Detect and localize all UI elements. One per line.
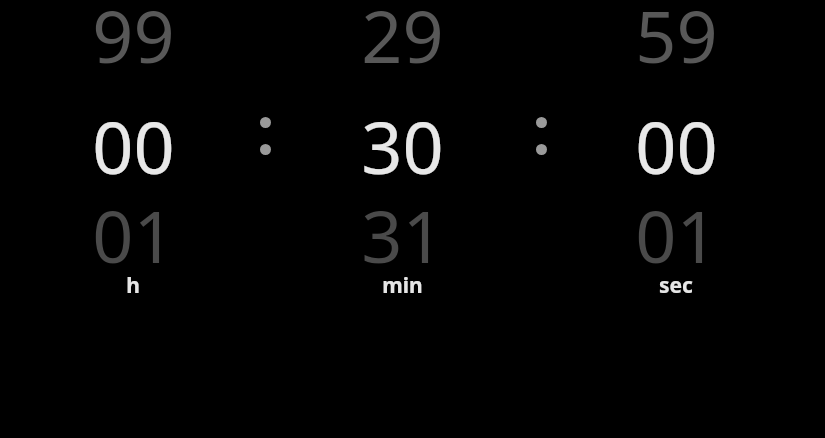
staticText: 29 [361, 0, 444, 84]
other: separator [471, 0, 611, 438]
staticText: sec [659, 271, 693, 300]
staticText: min [382, 271, 423, 300]
staticText: 59 [635, 0, 718, 84]
staticText: 00 [92, 97, 175, 185]
button[interactable]: 99 [68, 0, 198, 308]
button[interactable]: 29 [333, 0, 471, 308]
staticText: 31 [361, 186, 444, 266]
staticText: 01 [635, 186, 718, 266]
staticText: 00 [635, 97, 718, 185]
button[interactable]: 59 [611, 0, 741, 308]
staticText: 30 [361, 97, 444, 185]
other: separator [198, 0, 333, 438]
staticText: 01 [92, 186, 175, 266]
staticText: 99 [92, 0, 175, 84]
staticText: h [126, 271, 140, 300]
